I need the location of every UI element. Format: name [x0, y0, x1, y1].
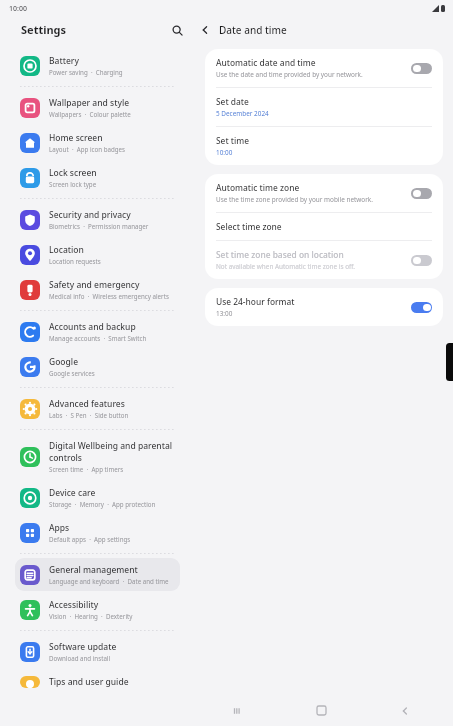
button[interactable]: Accessibility — [15, 593, 180, 626]
staticText: Settings — [21, 22, 67, 37]
button[interactable]: Recents — [195, 695, 279, 726]
button[interactable]: Location — [15, 238, 180, 271]
staticText: Security and privacy — [49, 209, 131, 221]
staticText: Screen lock type — [49, 180, 97, 188]
staticText: Language and keyboard · Date and time — [49, 577, 169, 585]
staticText: Set date — [216, 96, 249, 107]
staticText: 10:00 — [9, 4, 27, 14]
staticText: Set time — [216, 135, 250, 146]
button[interactable]: Software update — [15, 635, 180, 668]
button[interactable]: Wallpaper and style — [15, 91, 180, 124]
button[interactable]: Tips and user guide — [15, 670, 180, 694]
staticText: Set time zone based on location — [216, 249, 344, 260]
button[interactable]: Home — [279, 695, 363, 726]
button[interactable]: Advanced features — [15, 392, 180, 425]
staticText: Biometrics · Permission manager — [49, 222, 149, 230]
button[interactable]: Toggle off — [411, 188, 432, 199]
staticText: Storage · Memory · App protection — [49, 500, 156, 508]
staticText: Device care — [49, 487, 96, 499]
button[interactable]: Google — [15, 350, 180, 383]
staticText: 5 December 2024 — [216, 109, 269, 118]
staticText: Google — [49, 356, 79, 368]
staticText: Wallpapers · Colour palette — [49, 110, 131, 118]
staticText: Google services — [49, 369, 95, 377]
staticText: Select time zone — [216, 221, 282, 232]
button[interactable]: Battery — [15, 49, 180, 82]
staticText: 10:00 — [216, 148, 233, 157]
button[interactable]: Back — [197, 22, 213, 38]
staticText: Default apps · App settings — [49, 535, 131, 543]
staticText: Accounts and backup — [49, 321, 136, 333]
button[interactable]: Home screen — [15, 126, 180, 159]
staticText: Screen time · App timers — [49, 465, 124, 473]
button[interactable]: Search — [169, 22, 185, 38]
button[interactable]: Security and privacy — [15, 203, 180, 236]
staticText: Not available when Automatic time zone i… — [216, 262, 355, 271]
button[interactable]: Use 24-hour format — [205, 288, 443, 326]
staticText: General management — [49, 564, 138, 576]
staticText: Accessibility — [49, 599, 99, 611]
staticText: Automatic date and time — [216, 57, 316, 68]
button[interactable]: Accounts and backup — [15, 315, 180, 348]
staticText: Automatic time zone — [216, 182, 300, 193]
staticText: Lock screen — [49, 167, 97, 179]
staticText: Advanced features — [49, 398, 125, 410]
button[interactable]: General management — [15, 558, 180, 591]
staticText: Date and time — [219, 23, 287, 37]
button[interactable]: Lock screen — [15, 161, 180, 194]
staticText: Download and install — [49, 654, 111, 662]
button[interactable]: Automatic date and time — [205, 49, 443, 87]
button[interactable]: Apps — [15, 516, 180, 549]
button[interactable]: Device care — [15, 481, 180, 514]
staticText: Medical info · Wireless emergency alerts — [49, 292, 169, 300]
button[interactable]: Set time zone based on location — [205, 241, 443, 279]
staticText: Location requests — [49, 257, 101, 265]
staticText: Software update — [49, 641, 117, 653]
staticText: 13:00 — [216, 309, 233, 318]
staticText: Safety and emergency — [49, 279, 140, 291]
staticText: Power saving · Charging — [49, 68, 123, 76]
staticText: Use the date and time provided by your n… — [216, 70, 363, 79]
button[interactable]: Toggle on — [411, 302, 432, 313]
staticText: Labs · S Pen · Side button — [49, 411, 129, 419]
button[interactable]: Set date — [205, 88, 443, 126]
button[interactable]: Edge panel handle — [446, 343, 453, 381]
staticText: Location — [49, 244, 84, 256]
button[interactable]: Toggle off — [411, 63, 432, 74]
staticText: Layout · App icon badges — [49, 145, 126, 153]
staticText: Vision · Hearing · Dexterity — [49, 612, 133, 620]
button[interactable]: Automatic time zone — [205, 174, 443, 212]
staticText: Battery — [49, 55, 79, 67]
staticText: Manage accounts · Smart Switch — [49, 334, 147, 342]
staticText: Digital Wellbeing and parental controls — [49, 440, 175, 464]
staticText: Tips and user guide — [49, 676, 129, 688]
button[interactable]: Digital Wellbeing and parental controls — [15, 434, 180, 479]
button[interactable]: Select time zone — [205, 213, 443, 240]
staticText: Use 24-hour format — [216, 296, 295, 307]
staticText: Apps — [49, 522, 70, 534]
button[interactable]: Safety and emergency — [15, 273, 180, 306]
button[interactable]: Toggle off — [411, 255, 432, 266]
button[interactable]: Back — [363, 695, 447, 726]
staticText: Wallpaper and style — [49, 97, 130, 109]
staticText: Use the time zone provided by your mobil… — [216, 195, 373, 204]
button[interactable]: Set time — [205, 127, 443, 165]
staticText: Home screen — [49, 132, 103, 144]
